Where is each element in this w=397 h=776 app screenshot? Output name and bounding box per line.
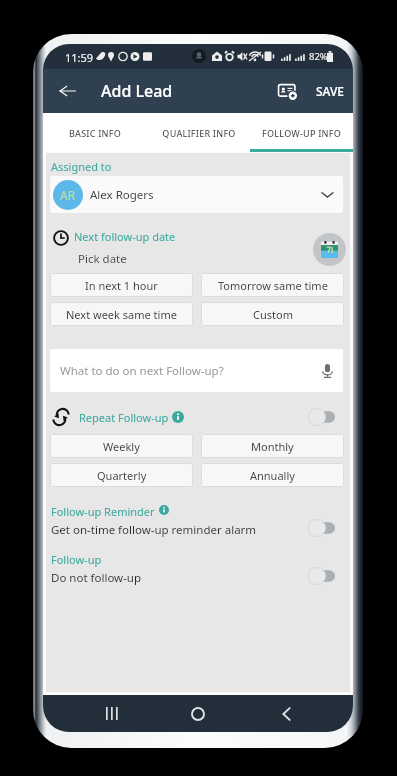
button[interactable]: Toggle repeat follow-up <box>308 408 335 426</box>
staticText: FOLLOW-UP INFO <box>262 127 341 139</box>
button[interactable]: Pick date <box>313 233 346 266</box>
staticText: Follow-up Reminder <box>51 504 155 519</box>
button[interactable]: Custom <box>201 302 344 326</box>
button[interactable]: BASIC INFO <box>43 113 147 152</box>
staticText: Follow-up <box>51 552 102 567</box>
button[interactable]: Home <box>178 695 218 732</box>
button[interactable]: FOLLOW-UP INFO <box>250 113 353 152</box>
staticText: Get on-time follow-up reminder alarm <box>51 522 257 538</box>
staticText: 82% <box>309 50 328 63</box>
staticText: Tomorrow same time <box>218 278 328 293</box>
button[interactable]: Next week same time <box>50 302 193 326</box>
button[interactable]: Quarterly <box>50 463 193 487</box>
staticText: What to do on next Follow-up? <box>60 363 224 379</box>
staticText: Custom <box>253 307 293 322</box>
staticText: Weekly <box>103 439 140 454</box>
button[interactable]: Tomorrow same time <box>201 273 344 297</box>
staticText: Next week same time <box>66 307 177 322</box>
staticText: Monthly <box>251 439 294 454</box>
staticText: QUALIFIER INFO <box>162 127 236 139</box>
staticText: Pick date <box>78 251 127 267</box>
staticText: Quarterly <box>97 468 147 483</box>
staticText: BASIC INFO <box>69 127 121 139</box>
button[interactable]: Back <box>266 695 306 732</box>
button[interactable]: In next 1 hour <box>50 273 193 297</box>
staticText: Next follow-up date <box>74 229 176 244</box>
staticText: In next 1 hour <box>85 278 158 293</box>
staticText: Alex Rogers <box>90 187 154 203</box>
button[interactable]: QUALIFIER INFO <box>147 113 250 152</box>
staticText: Assigned to <box>51 159 112 174</box>
button[interactable]: What to do on next Follow-up? <box>50 349 343 392</box>
staticText: Repeat Follow-up <box>79 410 169 425</box>
button[interactable]: Back <box>48 69 86 113</box>
button[interactable]: SAVE <box>313 69 347 113</box>
staticText: 11:59 <box>65 50 94 65</box>
button[interactable]: AR <box>50 176 343 213</box>
staticText: Do not follow-up <box>51 570 142 586</box>
button[interactable]: Add contact <box>269 69 305 113</box>
staticText: SAVE <box>316 83 345 99</box>
button[interactable]: Recent apps <box>91 695 131 732</box>
staticText: Add Lead <box>101 80 173 102</box>
button[interactable]: Toggle reminder <box>308 519 335 537</box>
staticText: Annually <box>250 468 295 483</box>
button[interactable]: Toggle do not follow-up <box>308 567 335 585</box>
button[interactable]: Weekly <box>50 434 193 458</box>
button[interactable]: Annually <box>201 463 344 487</box>
button[interactable]: Monthly <box>201 434 344 458</box>
staticText: AR <box>60 187 76 203</box>
